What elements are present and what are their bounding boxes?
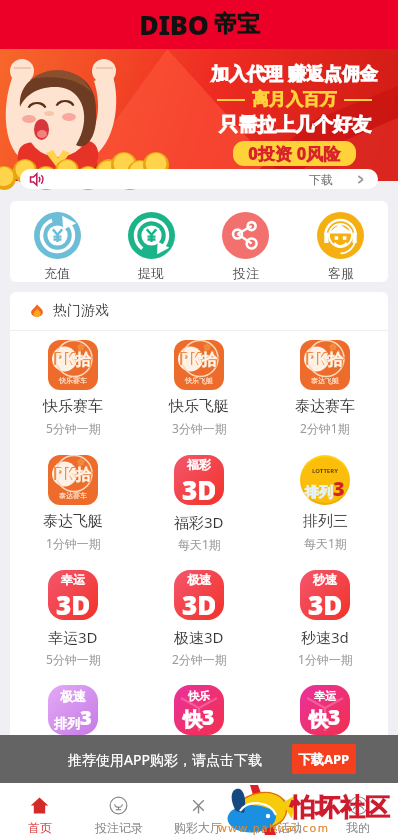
- button[interactable]: 幸运: [10, 561, 136, 676]
- staticText: 3分钟一期: [298, 766, 353, 782]
- button[interactable]: 购彩大厅: [158, 787, 238, 835]
- staticText: 排列: [54, 715, 80, 731]
- staticText: 3: [328, 703, 341, 732]
- staticText: 每天1期: [178, 536, 221, 552]
- staticText: 投注: [233, 265, 259, 281]
- staticText: 极速排列3: [39, 742, 108, 762]
- staticText: 快: [309, 708, 328, 732]
- staticText: PK拾: [181, 348, 218, 370]
- staticText: PK拾: [179, 347, 219, 370]
- staticText: 福彩3D: [174, 512, 224, 532]
- staticText: 1分钟一期: [46, 535, 101, 551]
- staticText: 幸运快3: [298, 742, 352, 762]
- staticText: DIBO: [139, 6, 209, 43]
- button[interactable]: 幸运: [262, 676, 388, 791]
- staticText: 客服: [328, 265, 354, 281]
- staticText: 幸运3D: [48, 627, 98, 647]
- staticText: 秒速: [313, 572, 337, 587]
- staticText: 排列三: [303, 512, 348, 531]
- staticText: 2分钟1期: [300, 420, 350, 436]
- staticText: 3D: [308, 587, 343, 620]
- staticText: 3D: [182, 472, 217, 505]
- button[interactable]: PK拾: [10, 446, 136, 561]
- staticText: PK拾: [53, 347, 93, 370]
- staticText: 帝宝: [214, 10, 260, 39]
- staticText: 0投资 0风险: [248, 142, 341, 165]
- staticText: PK拾: [55, 463, 92, 485]
- staticText: 热门游戏: [53, 302, 109, 320]
- button[interactable]: 优惠活动: [238, 787, 318, 835]
- staticText: 2分钟一期: [172, 651, 227, 667]
- staticText: 3: [202, 703, 215, 732]
- button[interactable]: 投注: [198, 203, 293, 281]
- button[interactable]: PK拾: [262, 331, 388, 446]
- staticText: 1分钟一期: [298, 651, 353, 667]
- button[interactable]: 客服: [293, 203, 388, 281]
- staticText: PK拾: [307, 348, 344, 370]
- staticText: 快乐飞艇: [185, 376, 213, 385]
- staticText: 快: [183, 708, 202, 732]
- button[interactable]: 投注记录: [79, 787, 158, 835]
- button[interactable]: LOTTERY: [262, 446, 388, 561]
- staticText: 加入代理 赚返点佣金: [211, 61, 378, 86]
- staticText: 幸运: [314, 689, 336, 703]
- button[interactable]: 下载APP: [292, 744, 356, 774]
- button[interactable]: 充值: [10, 203, 104, 281]
- staticText: 排列: [305, 484, 333, 502]
- staticText: 3分钟一期: [172, 766, 227, 782]
- staticText: 怕坏社区: [290, 792, 390, 823]
- staticText: 购彩大厅: [174, 820, 222, 835]
- staticText: 3分钟一期: [172, 420, 227, 436]
- staticText: 泰达赛车: [295, 397, 355, 416]
- staticText: 首页: [28, 820, 52, 835]
- staticText: 3: [80, 704, 92, 731]
- staticText: 充值: [44, 265, 70, 281]
- staticText: 福彩: [187, 457, 211, 472]
- staticText: 泰达飞艇: [311, 376, 339, 385]
- staticText: PK拾: [53, 462, 93, 485]
- staticText: 快乐赛车: [43, 397, 103, 416]
- staticText: 优惠活动: [254, 820, 302, 835]
- staticText: 3分钟一期: [46, 766, 101, 782]
- staticText: 极速3D: [174, 627, 224, 647]
- button[interactable]: 极速: [10, 676, 136, 791]
- button[interactable]: 快乐: [136, 676, 262, 791]
- button[interactable]: PK拾: [10, 331, 136, 446]
- staticText: PK拾: [305, 347, 345, 370]
- staticText: 幸运: [61, 572, 85, 587]
- staticText: 快乐赛车: [59, 376, 87, 385]
- staticText: 快乐飞艇: [169, 397, 229, 416]
- staticText: 快乐: [188, 689, 210, 703]
- staticText: 泰达飞艇: [43, 512, 103, 531]
- staticText: 只需拉上几个好友: [219, 113, 371, 137]
- staticText: 快乐快3: [172, 742, 226, 762]
- button[interactable]: 我的: [318, 787, 398, 835]
- staticText: 极速: [187, 572, 211, 587]
- staticText: 下载APP: [298, 750, 350, 768]
- staticText: 推荐使用APP购彩，请点击下载: [68, 750, 262, 769]
- staticText: www.pahuai.com: [218, 820, 330, 835]
- staticText: 下载: [309, 172, 333, 187]
- staticText: 3: [333, 475, 345, 502]
- staticText: PK拾: [55, 348, 92, 370]
- staticText: LOTTERY: [312, 467, 338, 475]
- button[interactable]: 秒速: [262, 561, 388, 676]
- button[interactable]: 提现: [104, 203, 198, 281]
- staticText: 极速: [60, 688, 86, 704]
- button[interactable]: Announcement: [20, 169, 378, 189]
- staticText: 投注记录: [95, 820, 143, 835]
- button[interactable]: 首页: [0, 787, 79, 835]
- staticText: 泰达赛车: [59, 491, 87, 500]
- staticText: 每天1期: [304, 535, 347, 551]
- button[interactable]: PK拾: [136, 331, 262, 446]
- staticText: 5分钟一期: [46, 651, 101, 667]
- button[interactable]: 极速: [136, 561, 262, 676]
- staticText: 3D: [56, 587, 91, 620]
- staticText: 我的: [346, 820, 370, 835]
- staticText: 提现: [138, 265, 164, 281]
- staticText: 3D: [182, 587, 217, 620]
- staticText: 离月入百万: [252, 89, 337, 110]
- staticText: 秒速3d: [301, 627, 349, 647]
- button[interactable]: 福彩: [136, 446, 262, 561]
- other: Announcement: [29, 172, 44, 187]
